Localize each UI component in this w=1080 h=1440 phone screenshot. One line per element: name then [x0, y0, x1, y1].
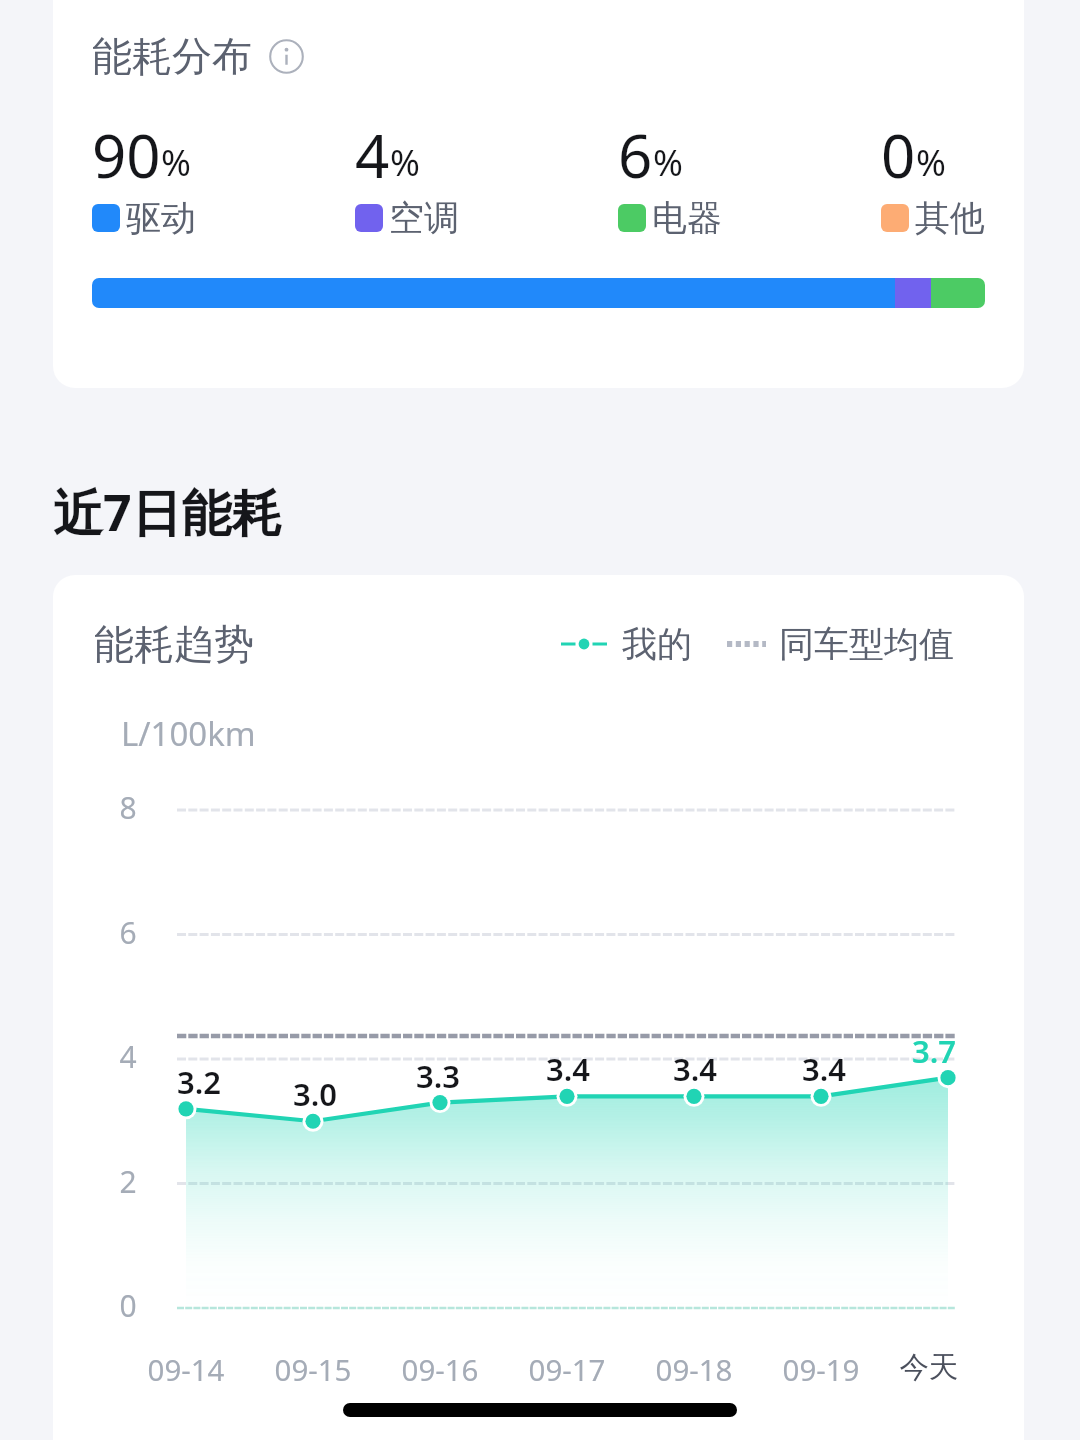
- staticText: 空调: [389, 196, 459, 240]
- staticText: 能耗趋势: [94, 619, 254, 669]
- button[interactable]: 90: [92, 114, 196, 240]
- staticText: 0: [111, 1285, 145, 1326]
- staticText: 0: [881, 114, 916, 196]
- staticText: 电器: [652, 196, 722, 240]
- staticText: 3.0: [270, 1073, 360, 1115]
- staticText: %: [916, 138, 946, 187]
- staticText: L/100km: [121, 711, 256, 756]
- staticText: 4: [111, 1036, 145, 1077]
- staticText: 09-15: [243, 1349, 383, 1389]
- staticText: 近7日能耗: [53, 478, 282, 546]
- button[interactable]: 0: [881, 114, 985, 240]
- staticText: 3.4: [650, 1048, 740, 1090]
- button[interactable]: 我的: [561, 622, 692, 666]
- button[interactable]: 能耗分布说明: [269, 39, 304, 74]
- staticText: 09-19: [751, 1349, 891, 1389]
- staticText: 8: [111, 787, 145, 828]
- staticText: 6: [618, 114, 653, 196]
- staticText: 今天: [859, 1349, 999, 1386]
- button[interactable]: 4: [355, 114, 459, 240]
- staticText: 3.7: [889, 1030, 979, 1072]
- staticText: 09-14: [116, 1349, 256, 1389]
- button[interactable]: 6: [618, 114, 722, 240]
- staticText: 09-17: [497, 1349, 637, 1389]
- staticText: 09-18: [624, 1349, 764, 1389]
- staticText: 6: [111, 912, 145, 953]
- staticText: 90: [92, 114, 161, 196]
- staticText: 我的: [622, 622, 692, 666]
- staticText: 3.2: [154, 1061, 244, 1103]
- staticText: %: [653, 138, 683, 187]
- staticText: 3.4: [779, 1048, 869, 1090]
- staticText: %: [161, 138, 191, 187]
- staticText: 3.3: [393, 1055, 483, 1097]
- staticText: 其他: [915, 196, 985, 240]
- staticText: 能耗分布: [92, 31, 252, 81]
- staticText: 驱动: [126, 196, 196, 240]
- button[interactable]: 同车型均值: [727, 622, 954, 666]
- staticText: %: [390, 138, 420, 187]
- staticText: 同车型均值: [779, 622, 954, 666]
- staticText: 4: [355, 114, 390, 196]
- staticText: 3.4: [523, 1048, 613, 1090]
- staticText: 2: [111, 1161, 145, 1202]
- staticText: 09-16: [370, 1349, 510, 1389]
